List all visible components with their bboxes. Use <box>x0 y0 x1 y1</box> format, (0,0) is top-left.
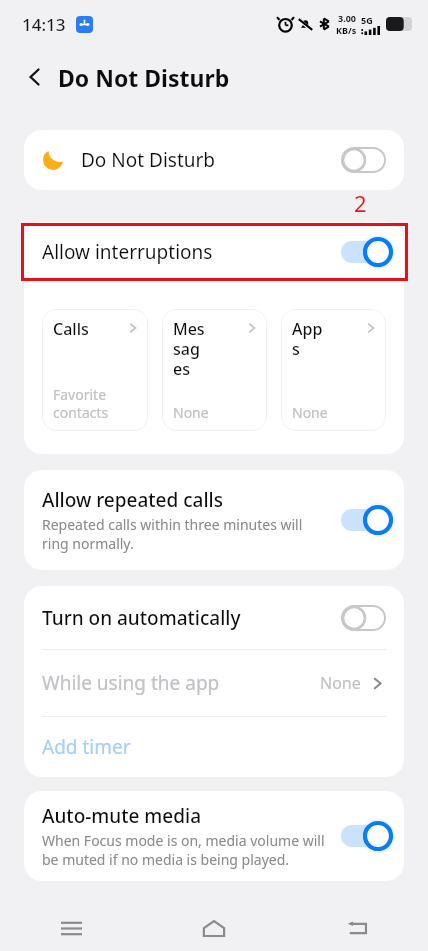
staticText: Do Not Disturb <box>81 147 216 173</box>
staticText: Turn on automatically <box>42 605 241 631</box>
staticText: Auto-mute media <box>42 803 202 829</box>
button[interactable]: Turn on automatically <box>24 586 404 649</box>
staticText: Allow repeated calls <box>42 487 223 513</box>
button[interactable]: Auto-mute media <box>24 791 404 881</box>
button[interactable]: Back <box>285 905 428 951</box>
staticText: Add timer <box>42 734 131 760</box>
staticText: Allow interruptions <box>42 239 213 265</box>
staticText: None <box>320 672 361 694</box>
button[interactable]: Add timer <box>24 717 404 777</box>
staticText: 3.00 <box>338 12 356 24</box>
staticText: Repeated calls within three minutes will… <box>42 515 310 553</box>
button[interactable]: Messages <box>162 309 267 431</box>
staticText: Do Not Disturb <box>58 62 230 93</box>
staticText: When Focus mode is on, media volume will… <box>42 831 330 869</box>
button[interactable]: Calls <box>42 309 148 431</box>
staticText: Favorite contacts <box>53 385 125 422</box>
button[interactable]: Home <box>142 905 285 951</box>
staticText: None <box>173 403 245 422</box>
staticText: 14:13 <box>22 13 66 36</box>
button[interactable]: Allow interruptions <box>24 222 404 281</box>
button[interactable]: Toggle on <box>336 503 392 537</box>
staticText: Calls <box>53 318 89 340</box>
button[interactable]: Do Not Disturb <box>24 130 404 190</box>
button[interactable]: Back <box>14 56 56 98</box>
button[interactable]: Apps <box>281 309 386 431</box>
button[interactable]: Toggle on <box>336 235 392 269</box>
button[interactable]: Toggle on <box>336 819 392 853</box>
button[interactable]: Allow repeated calls <box>24 470 404 570</box>
button[interactable]: While using the app <box>24 650 404 716</box>
staticText: While using the app <box>42 670 220 696</box>
staticText: None <box>292 403 364 422</box>
button[interactable]: Toggle off <box>336 601 392 635</box>
staticText: Apps <box>292 318 328 359</box>
button[interactable]: Toggle off <box>336 143 392 177</box>
staticText: 2 <box>354 188 367 218</box>
staticText: Messages <box>173 318 209 379</box>
button[interactable]: Recents <box>0 905 142 951</box>
staticText: KB/s <box>336 24 357 36</box>
staticText: 5G <box>361 14 373 26</box>
